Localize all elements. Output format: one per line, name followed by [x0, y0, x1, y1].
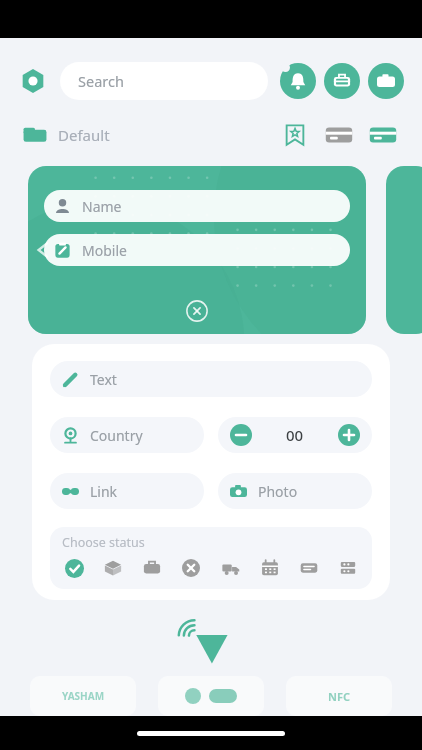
button[interactable]: Bag	[140, 556, 164, 580]
button[interactable]: YASHAM	[30, 676, 136, 716]
button[interactable]: Done	[62, 556, 86, 580]
button[interactable]: Cards gray	[322, 118, 356, 152]
button[interactable]: NFC	[286, 676, 392, 716]
button[interactable]: Menu	[18, 66, 48, 96]
button[interactable]: Server	[336, 556, 360, 580]
staticText: Default	[58, 125, 110, 145]
staticText: Photo	[258, 482, 298, 501]
staticText: Country	[90, 426, 143, 445]
button[interactable]: Calendar	[258, 556, 282, 580]
staticText: Name	[82, 197, 122, 216]
staticText: NFC	[328, 689, 351, 704]
button[interactable]: Notifications	[280, 63, 316, 99]
staticText: Text	[90, 370, 117, 389]
button[interactable]: Note	[297, 556, 321, 580]
staticText: Mobile	[82, 241, 127, 260]
button[interactable]: Decrease	[230, 424, 252, 446]
button[interactable]: Cancel	[179, 556, 203, 580]
button[interactable]: Mobile	[44, 234, 350, 266]
button[interactable]: Name	[28, 166, 366, 334]
staticText: Search	[78, 71, 124, 91]
staticText: YASHAM	[62, 689, 105, 703]
staticText: 00	[286, 425, 304, 445]
button[interactable]: Close	[184, 298, 210, 324]
button[interactable]: Link	[50, 473, 204, 509]
button[interactable]: Text	[50, 361, 372, 397]
staticText: Link	[90, 482, 118, 501]
button[interactable]: Camera	[368, 63, 404, 99]
button[interactable]: Name	[44, 190, 350, 222]
button[interactable]: Photo	[218, 473, 372, 509]
button[interactable]: Default	[22, 122, 110, 148]
button[interactable]: Cards green	[366, 118, 400, 152]
button[interactable]: Search	[60, 62, 268, 100]
button[interactable]: Shipping	[219, 556, 243, 580]
button[interactable]: Work	[324, 63, 360, 99]
button[interactable]: Country	[50, 417, 204, 453]
staticText: Choose status	[62, 534, 145, 551]
button[interactable]: Package	[101, 556, 125, 580]
button[interactable]: Increase	[338, 424, 360, 446]
button[interactable]	[158, 676, 264, 716]
button[interactable]: Next card	[386, 166, 422, 334]
button[interactable]: Bookmark	[280, 120, 310, 150]
